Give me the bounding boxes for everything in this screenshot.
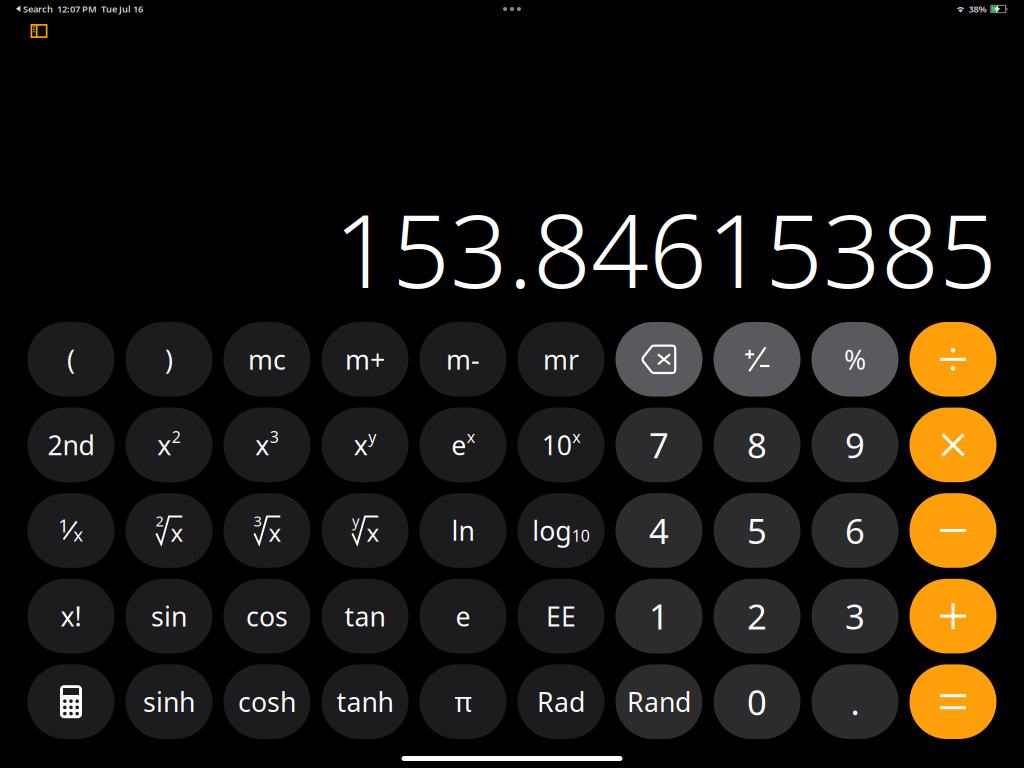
button[interactable]: x! (27, 579, 114, 653)
button[interactable]: 1/x (27, 493, 114, 568)
staticText: ln (451, 513, 474, 548)
button[interactable]: Rad (517, 664, 604, 739)
staticText: 12:07 PM (53, 3, 97, 15)
staticText: 38% (968, 3, 986, 15)
button[interactable]: Plus Minus (713, 322, 800, 397)
staticText: mc (248, 342, 286, 377)
button[interactable]: m- (419, 322, 506, 397)
staticText: 5 (747, 507, 767, 553)
staticText: 2 (747, 593, 767, 639)
staticText: e (455, 598, 470, 634)
staticText: Search (21, 3, 53, 15)
button[interactable]: EE (517, 579, 604, 653)
staticText: % (844, 342, 866, 377)
staticText: 8 (747, 422, 767, 468)
button[interactable]: Minus (909, 493, 996, 568)
staticText: sin (151, 598, 187, 634)
staticText: π (454, 684, 471, 719)
button[interactable]: root 2 (125, 493, 212, 568)
staticText: 10 (572, 525, 590, 546)
staticText: y (368, 426, 376, 447)
button[interactable]: mc (223, 322, 310, 397)
button[interactable]: 3 (811, 579, 898, 653)
button[interactable]: 7 (615, 408, 702, 482)
button[interactable]: 4 (615, 493, 702, 568)
staticText: e (451, 427, 466, 463)
staticText: x (366, 517, 379, 548)
button[interactable]: ex (419, 408, 506, 482)
button[interactable]: root y (321, 493, 408, 568)
staticText: 0 (747, 679, 767, 725)
button[interactable]: ln (419, 493, 506, 568)
button[interactable]: 10x (517, 408, 604, 482)
staticText: x! (60, 598, 81, 634)
button[interactable]: Rand (615, 664, 702, 739)
staticText: 3 (270, 426, 279, 447)
staticText: x (73, 522, 83, 547)
button[interactable]: . (811, 664, 898, 739)
button[interactable]: History (24, 19, 54, 43)
button[interactable]: 0 (713, 664, 800, 739)
staticText: y (352, 511, 359, 531)
button[interactable]: 9 (811, 408, 898, 482)
button[interactable]: Multiply (909, 408, 996, 482)
button[interactable]: Plus (909, 579, 996, 653)
staticText: 9 (845, 422, 865, 468)
staticText: 6 (845, 507, 865, 553)
staticText: x (354, 427, 368, 463)
staticText: 2nd (47, 427, 94, 463)
button[interactable]: Divide (909, 322, 996, 397)
button[interactable]: 2 (713, 579, 800, 653)
staticText: 7 (649, 422, 669, 468)
button[interactable]: 2nd (27, 408, 114, 482)
button[interactable]: 1 (615, 579, 702, 653)
staticText: x (157, 427, 171, 463)
staticText: 2 (172, 426, 181, 447)
button[interactable]: π (419, 664, 506, 739)
staticText: . (850, 679, 859, 725)
button[interactable]: Equals (909, 664, 996, 739)
button[interactable]: e (419, 579, 506, 653)
button[interactable]: tanh (321, 664, 408, 739)
staticText: cosh (238, 684, 296, 719)
button[interactable]: log10 (517, 493, 604, 568)
button[interactable]: 6 (811, 493, 898, 568)
staticText: cos (246, 598, 288, 634)
button[interactable]: sinh (125, 664, 212, 739)
button[interactable]: Delete (615, 322, 702, 397)
staticText: Tue Jul 16 (97, 3, 143, 15)
button[interactable]: sin (125, 579, 212, 653)
button[interactable]: tan (321, 579, 408, 653)
staticText: m- (446, 342, 480, 377)
staticText: Rand (627, 684, 691, 719)
button[interactable]: 8 (713, 408, 800, 482)
button[interactable]: m+ (321, 322, 408, 397)
staticText: 4 (649, 507, 669, 553)
button[interactable]: x3 (223, 408, 310, 482)
button[interactable]: ) (125, 322, 212, 397)
staticText: 2 (155, 511, 163, 531)
button[interactable]: Basic Calculator (27, 664, 114, 739)
button[interactable]: ( (27, 322, 114, 397)
button[interactable]: xy (321, 408, 408, 482)
button[interactable]: root 3 (223, 493, 310, 568)
button[interactable]: mr (517, 322, 604, 397)
staticText: 1 (649, 593, 669, 639)
staticText: 153.84615385 (334, 181, 997, 316)
staticText: 10 (542, 427, 572, 463)
staticText: 3 (845, 593, 865, 639)
staticText: 3 (253, 511, 261, 531)
staticText: tan (344, 598, 385, 634)
button[interactable]: 5 (713, 493, 800, 568)
staticText: x (170, 517, 183, 548)
button[interactable]: % (811, 322, 898, 397)
button[interactable]: x2 (125, 408, 212, 482)
staticText: ) (165, 342, 173, 377)
button[interactable]: cosh (223, 664, 310, 739)
staticText: x (268, 517, 281, 548)
staticText: 1 (58, 513, 69, 538)
staticText: sinh (143, 684, 195, 719)
staticText: log (532, 513, 571, 548)
staticText: EE (546, 598, 576, 634)
button[interactable]: cos (223, 579, 310, 653)
